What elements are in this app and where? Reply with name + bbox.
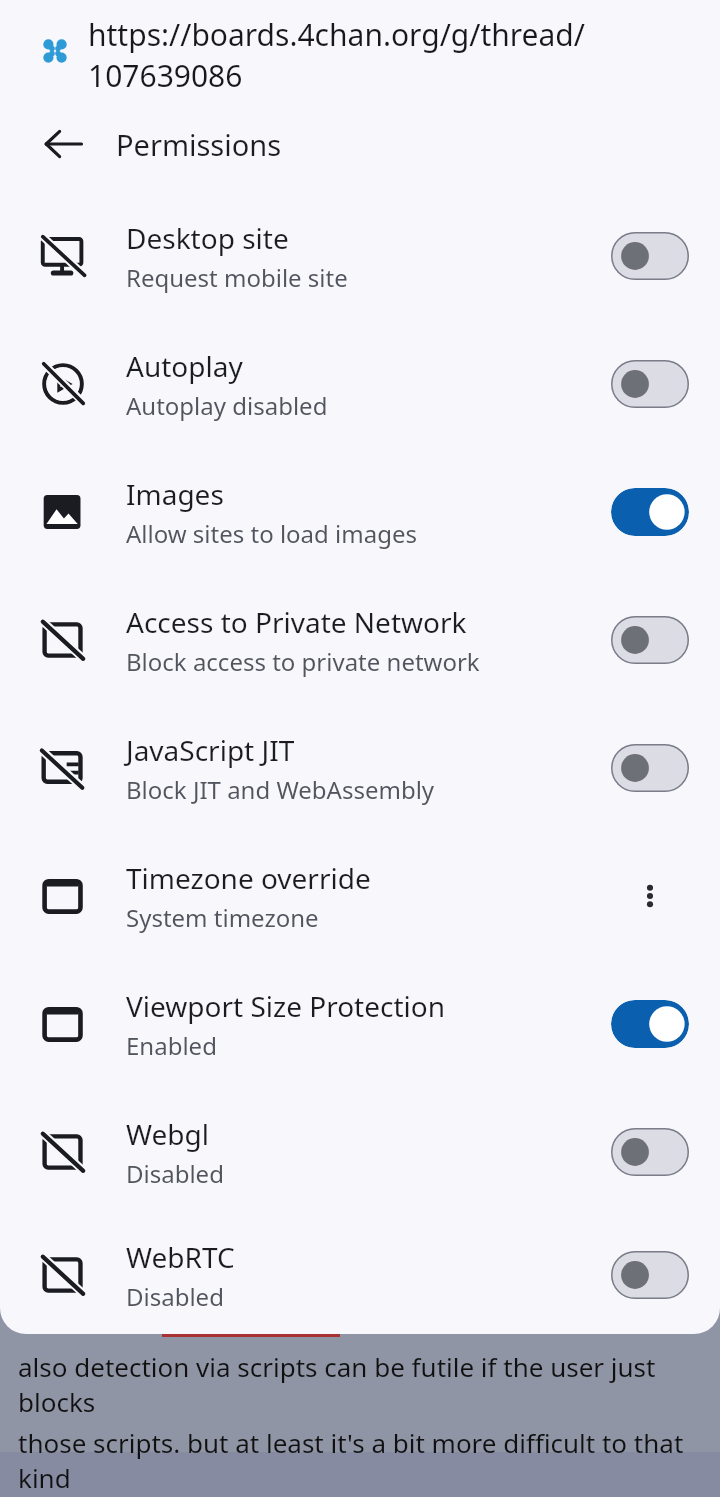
staticText: Permissions [116,125,282,164]
staticText: WebRTC [126,1238,235,1276]
button[interactable]: JavaScript JIT [0,704,720,832]
staticText: Allow sites to load images [126,517,417,550]
staticText: Access to Private Network [126,603,467,641]
button[interactable]: Access to Private Network toggle [611,616,689,664]
button[interactable]: https://boards.4chan.org/g/thread/107639… [0,14,720,88]
staticText: Block access to private network [126,645,480,678]
staticText: Viewport Size Protection [126,987,446,1025]
button[interactable]: Autoplay [0,320,720,448]
staticText: System timezone [126,901,319,934]
button[interactable]: Webgl [0,1088,720,1216]
button[interactable]: Webgl toggle [611,1128,689,1176]
button[interactable]: More options [614,860,686,932]
staticText: Autoplay disabled [126,389,328,422]
staticText: those scripts. but at least it's a bit m… [18,1425,720,1495]
button[interactable]: Access to Private Network [0,576,720,704]
staticText: Enabled [126,1029,217,1062]
staticText: Disabled [126,1280,224,1313]
button[interactable]: WebRTC [0,1216,720,1334]
button[interactable]: Desktop site toggle [611,232,689,280]
staticText: Disabled [126,1157,224,1190]
staticText: also detection via scripts can be futile… [18,1349,720,1419]
button[interactable]: Viewport Size Protection [0,960,720,1088]
staticText: Images [126,475,224,513]
button[interactable]: Images toggle [611,488,689,536]
staticText: JavaScript JIT [126,731,295,769]
button[interactable]: Images [0,448,720,576]
button[interactable]: Timezone override [0,832,720,960]
staticText: Autoplay [126,347,243,385]
button[interactable]: WebRTC toggle [611,1251,689,1299]
staticText: https://boards.4chan.org/g/thread/107639… [88,14,720,88]
staticText: Request mobile site [126,261,348,294]
staticText: Timezone override [126,859,371,897]
staticText: Desktop site [126,219,289,257]
button[interactable]: Desktop site [0,192,720,320]
button[interactable]: Back [28,109,98,179]
button[interactable]: JavaScript JIT toggle [611,744,689,792]
staticText: Webgl [126,1115,209,1153]
button[interactable]: Viewport Size Protection toggle [611,1000,689,1048]
staticText: Block JIT and WebAssembly [126,773,435,806]
button[interactable]: Autoplay toggle [611,360,689,408]
